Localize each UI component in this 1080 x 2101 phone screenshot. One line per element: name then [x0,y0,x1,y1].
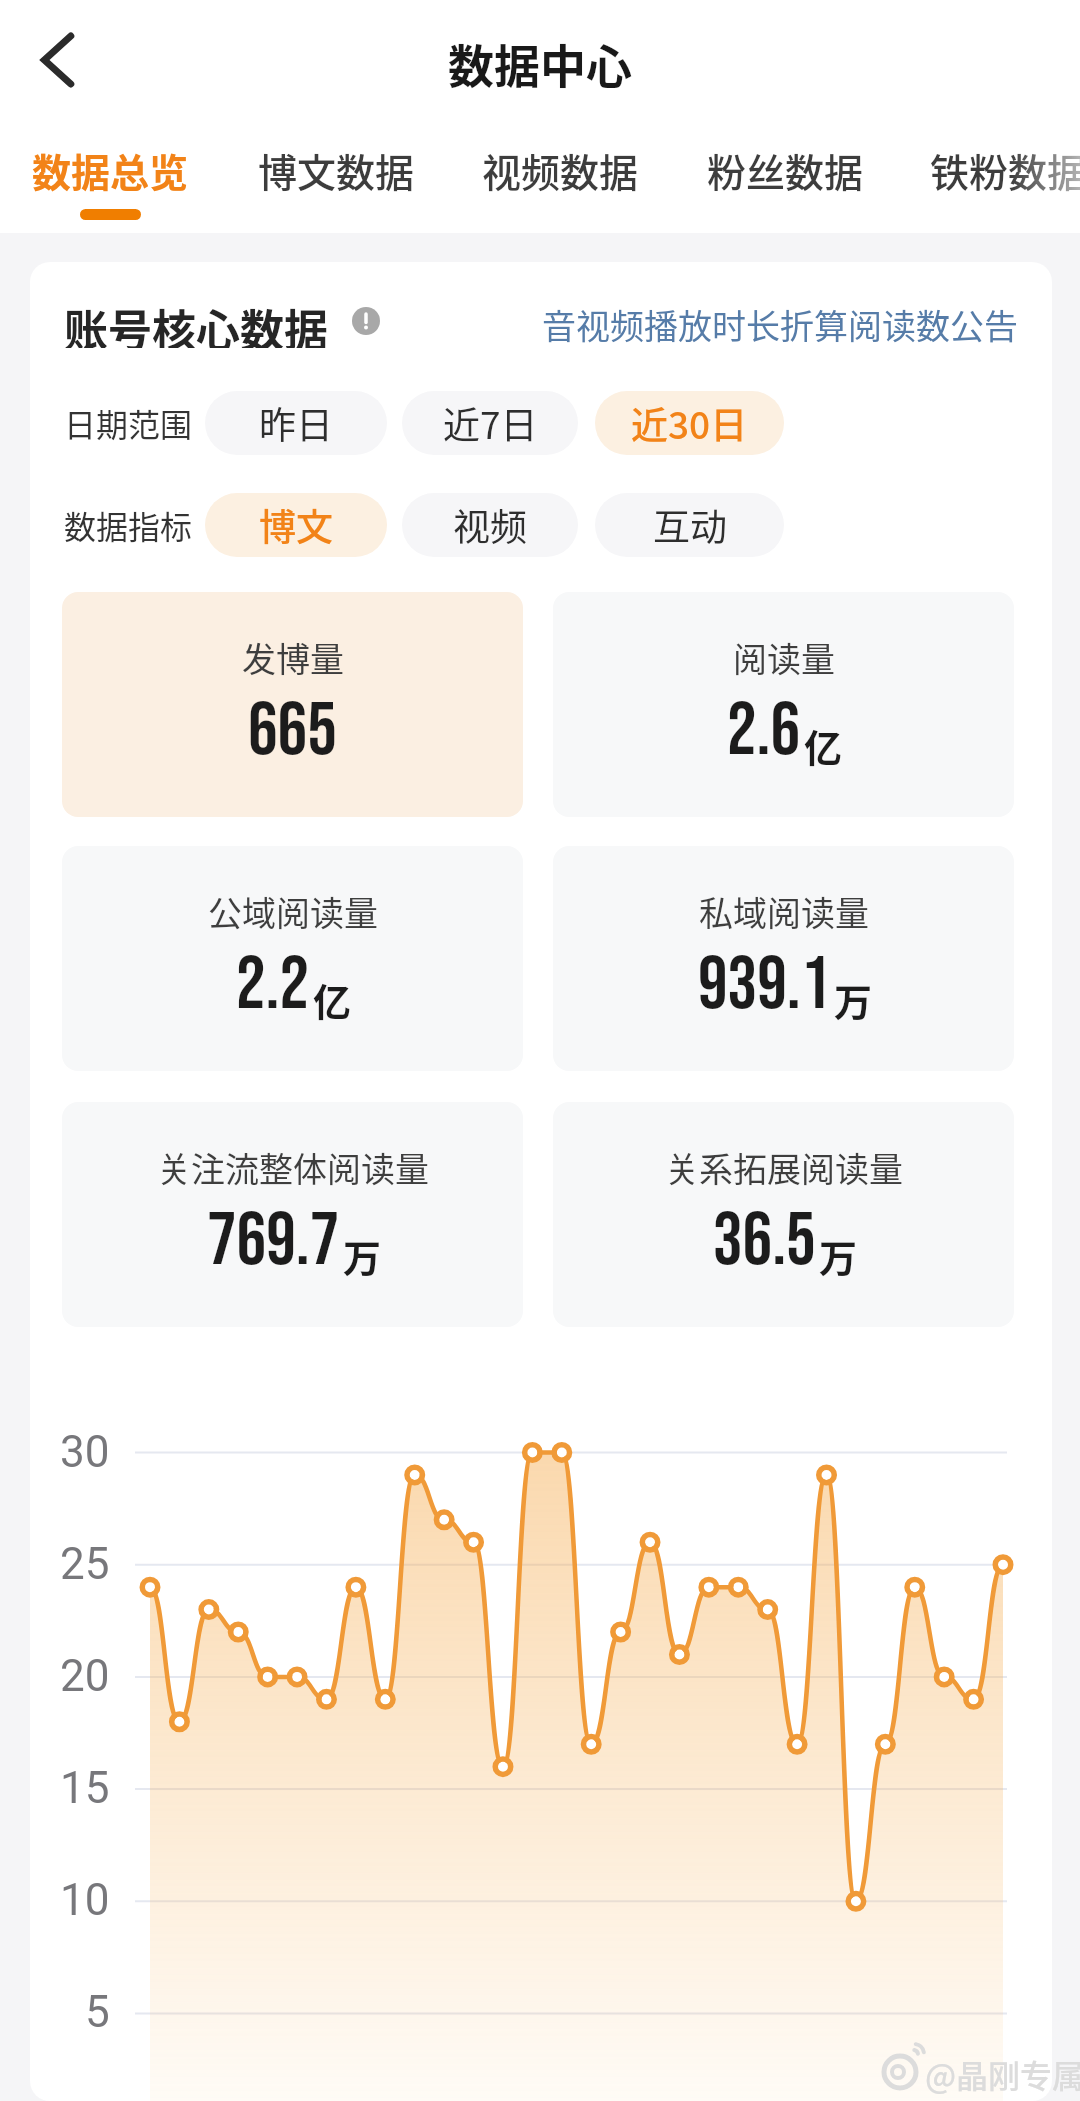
staticText: 亿 [804,718,843,773]
staticText: 昨日 [259,396,333,450]
staticText: 粉丝数据 [707,142,863,198]
staticText: 关注流整体阅读量 [157,1143,429,1192]
staticText: 公域阅读量 [208,887,378,936]
staticText: 769.7 [207,1197,340,1285]
button[interactable]: 近7日 [402,391,578,455]
staticText: 30 [60,1426,110,1478]
staticText: 铁粉数据 [930,142,1080,198]
staticText: 36.5 [713,1197,816,1285]
button[interactable]: 公域阅读量 [62,846,523,1071]
button[interactable]: 数据总览 [32,134,188,206]
button[interactable] [24,26,92,94]
button[interactable]: 粉丝数据 [707,134,863,206]
staticText: 15 [60,1762,110,1814]
staticText: 10 [60,1874,110,1926]
staticText: 私域阅读量 [699,887,869,936]
staticText: 互动 [653,498,727,552]
staticText: 视频数据 [482,142,638,198]
button[interactable]: 音视频播放时长折算阅读数公告 [540,300,1018,344]
staticText: 博文数据 [258,142,414,198]
staticText: 939.1 [698,941,831,1029]
staticText: 数据中心 [448,30,632,92]
button[interactable]: 博文 [205,493,387,557]
staticText: 25 [60,1538,110,1590]
staticText: 2.2 [236,941,310,1029]
button[interactable]: 昨日 [205,391,387,455]
staticText: 阅读量 [733,633,835,682]
staticText: 近7日 [443,396,538,450]
button[interactable]: 铁粉数据 [930,134,1080,206]
button[interactable]: 博文数据 [258,134,414,206]
staticText: 亿 [313,972,352,1027]
staticText: 关系拓展阅读量 [665,1143,903,1192]
staticText: 日期范围 [64,400,193,446]
button[interactable]: 近30日 [595,391,784,455]
button[interactable]: 视频 [402,493,578,557]
staticText: 2.6 [727,687,801,775]
staticText: 665 [248,687,337,775]
staticText: 数据总览 [32,142,188,198]
button[interactable]: 视频数据 [482,134,638,206]
staticText: 发博量 [242,633,344,682]
button[interactable]: 关系拓展阅读量 [553,1102,1014,1327]
staticText: 5 [85,1986,110,2038]
staticText: 音视频播放时长折算阅读数公告 [542,300,1018,344]
staticText: 账号核心数据 [64,296,328,348]
button[interactable]: 阅读量 [553,592,1014,817]
staticText: 万 [819,1228,858,1283]
button[interactable]: 关注流整体阅读量 [62,1102,523,1327]
staticText: 万 [343,1228,382,1283]
staticText: 数据指标 [64,502,193,548]
staticText: 视频 [453,498,527,552]
staticText: 万 [834,972,873,1027]
staticText: 近30日 [631,396,748,450]
staticText: @晶刚专属 [925,2051,1080,2095]
staticText: 博文 [259,498,333,552]
staticText: 20 [60,1650,110,1702]
button[interactable]: 发博量 [62,592,523,817]
button[interactable]: 互动 [595,493,784,557]
button[interactable]: 私域阅读量 [553,846,1014,1071]
